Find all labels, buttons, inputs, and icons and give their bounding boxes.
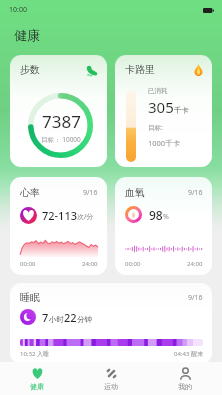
staticText: 心率 [20, 186, 40, 199]
staticText: 分钟 [77, 315, 92, 324]
staticText: 24:00 [187, 260, 203, 268]
staticText: 7 [42, 310, 49, 325]
staticText: 步数 [20, 63, 40, 76]
button[interactable]: 血氧 [115, 177, 212, 275]
button[interactable]: 步数 [10, 55, 107, 167]
staticText: 1000千卡 [148, 138, 181, 148]
button[interactable]: 健康 [0, 362, 74, 395]
button[interactable]: 心率 [10, 177, 107, 275]
button[interactable]: 我的 [148, 362, 222, 395]
staticText: % [163, 212, 169, 222]
staticText: 目标： 10000 [41, 135, 81, 144]
staticText: 22 [64, 310, 77, 325]
staticText: 9/16 [188, 293, 203, 303]
staticText: 运动 [104, 382, 118, 391]
staticText: 健康 [30, 382, 44, 391]
staticText: 10:00 [9, 5, 27, 15]
staticText: 已消耗 [148, 87, 168, 95]
staticText: 健康 [14, 27, 40, 43]
staticText: 9/16 [83, 188, 98, 198]
staticText: 睡眠 [20, 291, 40, 304]
staticText: 00:00 [20, 260, 36, 268]
staticText: 10:32 入睡 [20, 350, 49, 358]
staticText: 次/分 [77, 212, 94, 222]
button[interactable]: 卡路里 [115, 55, 212, 167]
staticText: 9/16 [188, 188, 203, 198]
staticText: 千卡 [174, 106, 189, 115]
staticText: 98 [149, 207, 163, 223]
staticText: 04:43 醒来 [174, 350, 203, 358]
button[interactable]: 运动 [74, 362, 148, 395]
staticText: 00:00 [125, 260, 141, 268]
staticText: 小时 [49, 315, 64, 324]
staticText: 305 [148, 97, 174, 117]
staticText: 血氧 [125, 186, 145, 199]
staticText: 卡路里 [125, 63, 155, 76]
staticText: 我的 [178, 382, 192, 391]
button[interactable]: 睡眠 [10, 283, 212, 364]
staticText: 24:00 [82, 260, 98, 268]
staticText: 目标: [148, 123, 163, 132]
staticText: 72-113 [42, 208, 77, 223]
staticText: 7387 [42, 110, 81, 133]
